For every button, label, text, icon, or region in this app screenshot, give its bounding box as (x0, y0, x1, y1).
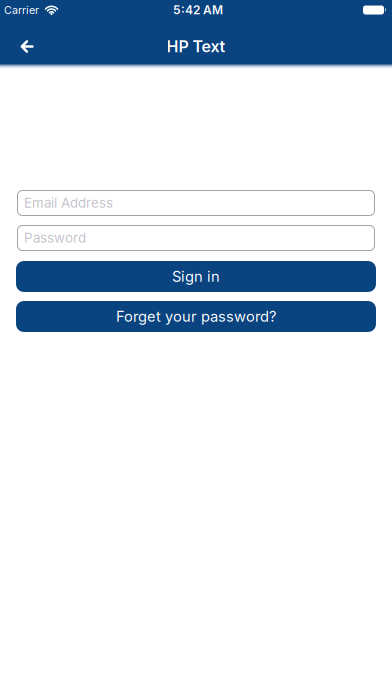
button[interactable]: Email Address (0, 190, 392, 216)
staticText: Forget your password? (116, 308, 276, 325)
staticText: Carrier (4, 4, 39, 16)
button[interactable]: Sign in (0, 261, 392, 292)
staticText: 5:42 AM (173, 3, 223, 17)
button[interactable]: Password (0, 225, 392, 251)
button[interactable]: Forget your password? (0, 301, 392, 332)
staticText: Password (24, 230, 86, 246)
staticText: HP Text (166, 37, 225, 56)
staticText: Email Address (24, 195, 113, 211)
button[interactable] (0, 20, 47, 64)
staticText: Sign in (172, 268, 220, 285)
